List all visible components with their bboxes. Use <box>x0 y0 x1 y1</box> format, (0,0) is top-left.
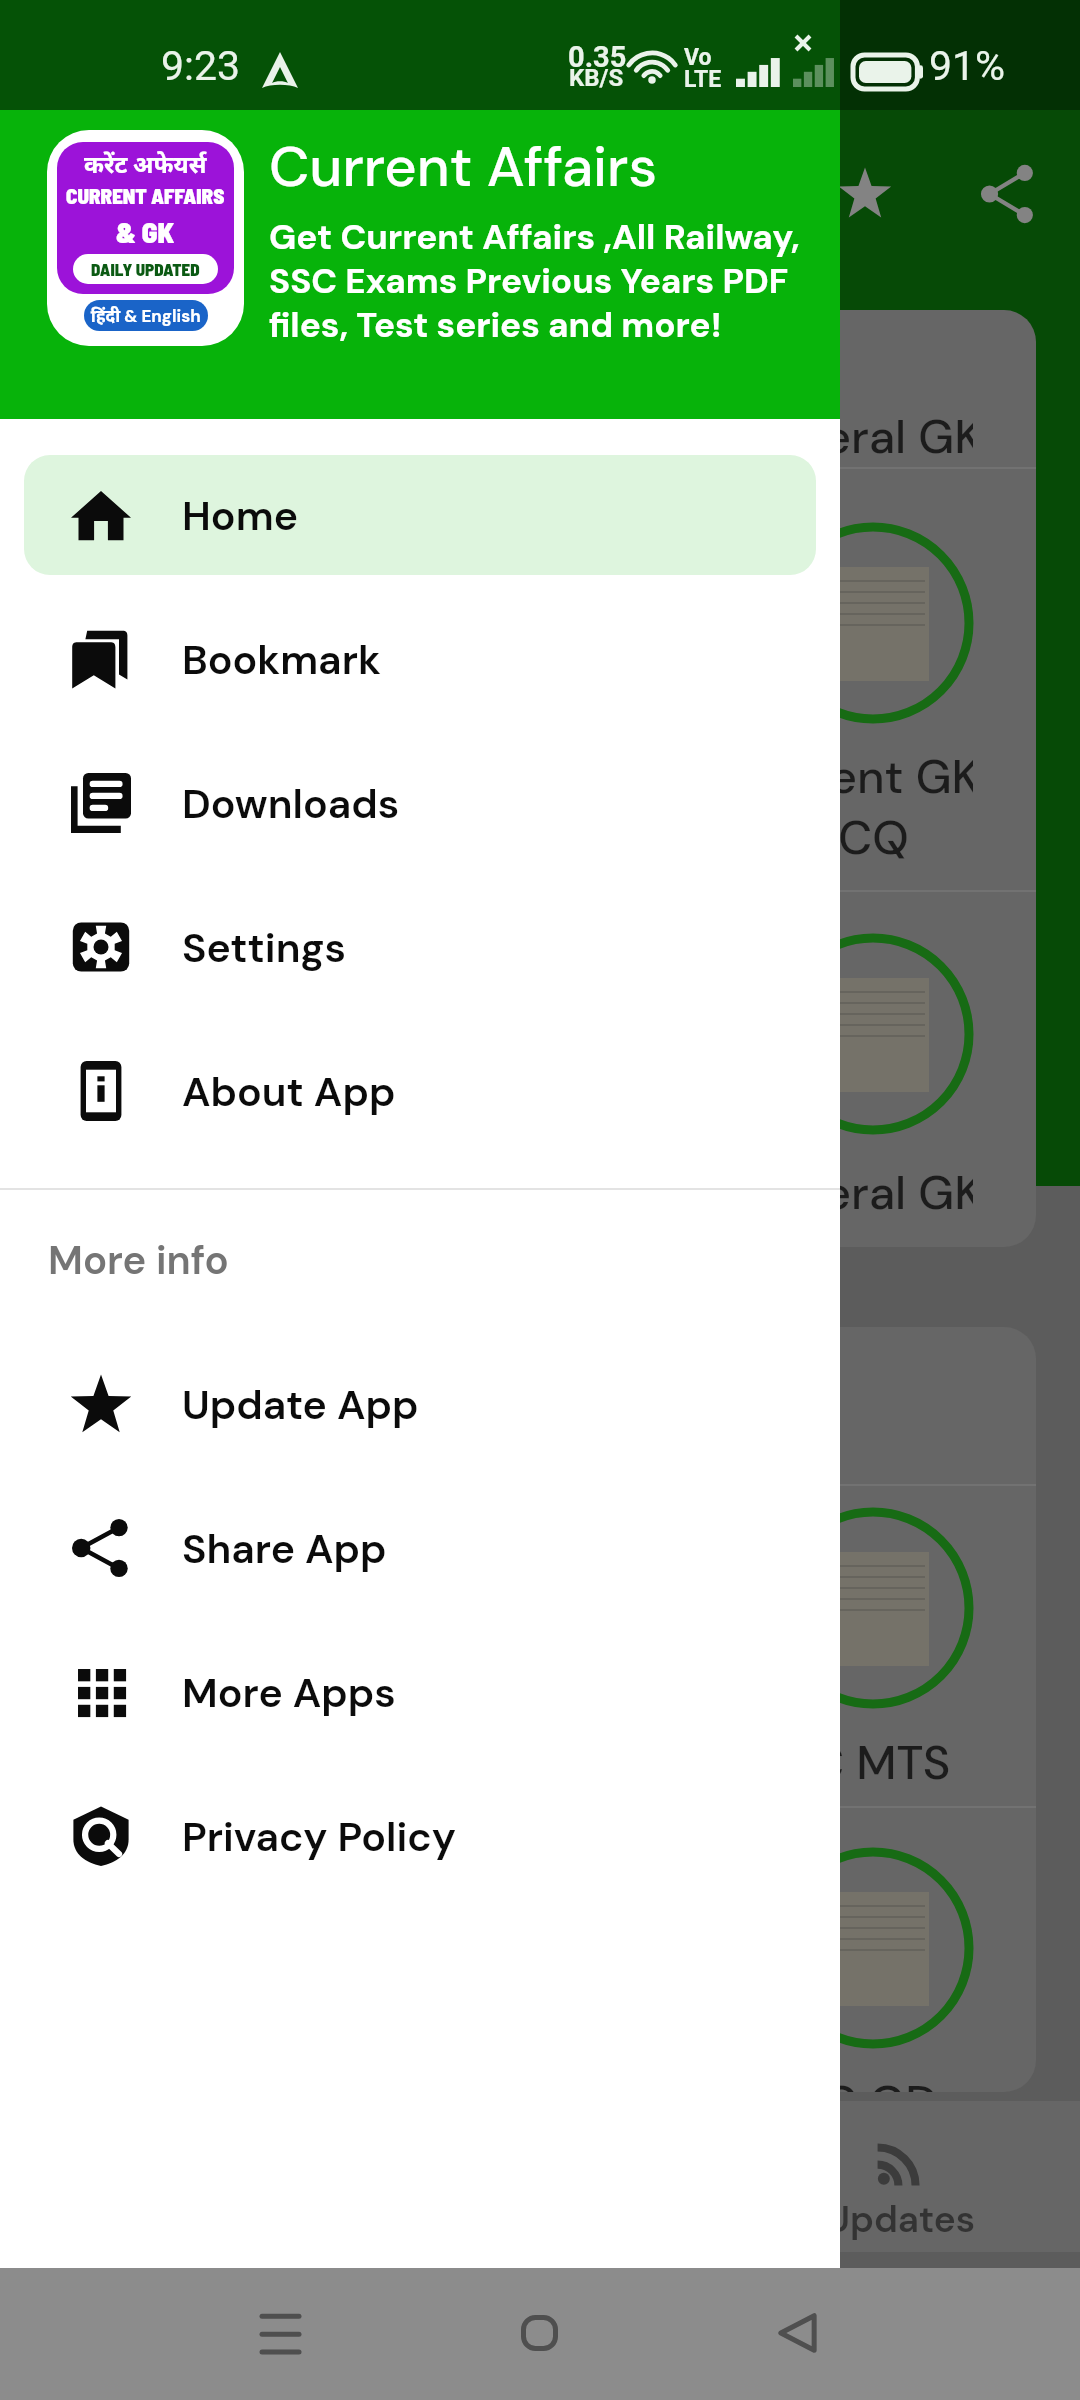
staticText: Bookmark <box>182 633 381 686</box>
staticText: हिंदी & English <box>91 304 201 327</box>
staticText: KB/S <box>569 64 624 92</box>
button[interactable]: Update App <box>24 1344 816 1464</box>
staticText: SSC GD <box>768 2072 938 2092</box>
staticText: करेंट अफेयर्स <box>84 147 207 180</box>
staticText: About App <box>182 1065 396 1118</box>
staticText: Current Affairs <box>269 130 658 203</box>
button[interactable]: General GK <box>44 310 1036 1247</box>
staticText: Privacy Policy <box>182 1810 456 1863</box>
button[interactable]: Privacy Policy <box>24 1776 816 1896</box>
staticText: Downloads <box>182 777 400 830</box>
button[interactable]: SSC MTS <box>44 1327 1036 2092</box>
button[interactable]: Share <box>948 134 1068 254</box>
staticText: 91% <box>929 42 1006 90</box>
button[interactable]: Current GK <box>44 469 1036 890</box>
staticText: General GK <box>733 406 973 467</box>
staticText: CURRENT AFFAIRS <box>66 183 225 208</box>
staticText: 9:23 <box>161 42 241 90</box>
staticText: Update App <box>182 1378 419 1431</box>
staticText: DAILY UPDATED <box>91 259 200 279</box>
button[interactable]: General GK <box>44 892 1036 1247</box>
staticText: Updates <box>825 2195 976 2243</box>
staticText: Vo <box>684 44 712 71</box>
button[interactable]: About App <box>24 1031 816 1151</box>
button[interactable]: Recent apps <box>220 2273 340 2393</box>
button[interactable]: Bookmark <box>24 599 816 719</box>
button[interactable]: Favorite <box>805 133 925 253</box>
staticText: LTE <box>684 66 722 93</box>
button[interactable]: Updates <box>810 2101 990 2252</box>
button[interactable]: Share App <box>24 1488 816 1608</box>
button[interactable]: Home <box>479 2273 599 2393</box>
button[interactable]: Home <box>24 455 816 575</box>
staticText: 0.35 <box>568 40 627 74</box>
button[interactable]: More Apps <box>24 1632 816 1752</box>
staticText: More info <box>48 1234 229 1286</box>
staticText: Share App <box>182 1522 387 1575</box>
button[interactable]: Back <box>737 2273 857 2393</box>
staticText: Get Current Affairs ,All Railway, SSC Ex… <box>269 214 800 347</box>
staticText: Settings <box>182 921 346 974</box>
staticText: More Apps <box>182 1666 396 1719</box>
button[interactable]: Settings <box>24 887 816 1007</box>
button[interactable]: Downloads <box>24 743 816 863</box>
staticText: & GK <box>116 214 175 249</box>
staticText: SSC MTS <box>755 1732 951 1793</box>
staticText: Current GK <box>733 746 973 807</box>
button[interactable]: SSC GD <box>44 1808 1036 2092</box>
staticText: Home <box>182 489 298 542</box>
staticText: General GK <box>733 1162 973 1223</box>
staticText: MCQ <box>798 807 909 868</box>
button[interactable]: SSC MTS <box>44 1486 1036 1806</box>
